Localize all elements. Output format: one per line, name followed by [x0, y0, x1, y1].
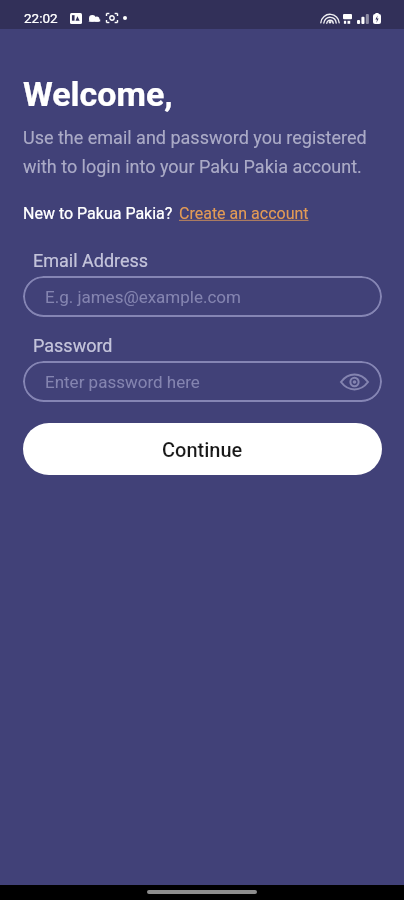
staticText: New to Pakua Pakia? — [23, 204, 173, 223]
button[interactable]: E.g. james@example.com — [23, 276, 382, 317]
staticText: Create an account — [179, 204, 309, 223]
staticText: Enter password here — [45, 372, 200, 392]
staticText: Welcome, — [23, 74, 173, 114]
button[interactable]: Enter password here — [23, 361, 382, 402]
staticText: Password — [33, 335, 113, 356]
staticText: 22:02 — [24, 10, 58, 26]
button[interactable]: Continue — [23, 423, 382, 475]
button[interactable]: Create an account — [179, 204, 309, 223]
button[interactable]: Show password — [337, 365, 371, 399]
staticText: Use the email and password you registere… — [23, 127, 382, 177]
staticText: Email Address — [33, 250, 149, 271]
staticText: E.g. james@example.com — [45, 287, 241, 307]
staticText: Continue — [162, 438, 243, 461]
